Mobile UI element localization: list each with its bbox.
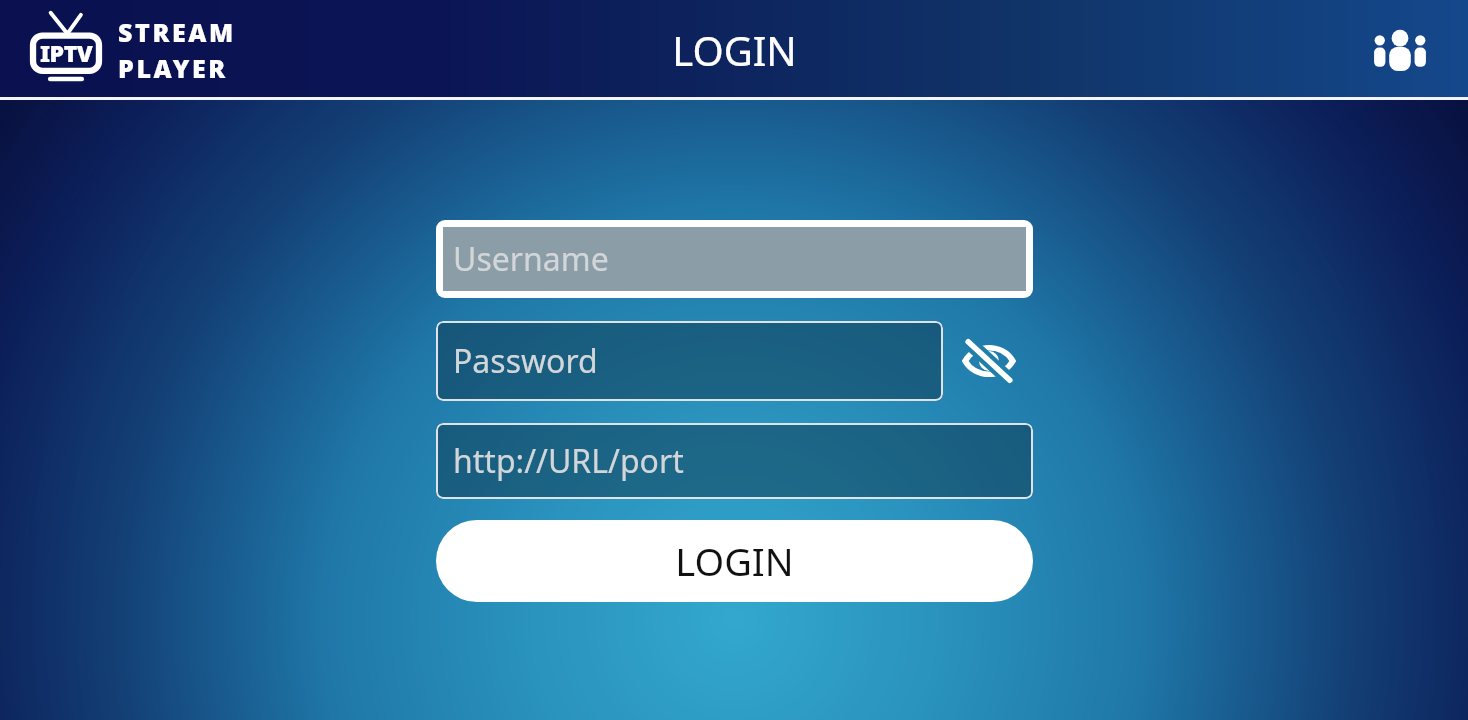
staticText: Password (453, 339, 598, 383)
button[interactable]: IPTV (24, 10, 236, 90)
button[interactable]: LOGIN (436, 520, 1033, 602)
staticText: http://URL/port (453, 439, 684, 483)
button[interactable]: Username (443, 227, 1026, 291)
button[interactable]: Accounts (1368, 18, 1432, 82)
staticText: Username (453, 237, 609, 281)
staticText: STREAM (118, 15, 236, 49)
button[interactable]: Show password (961, 333, 1017, 389)
staticText: LOGIN (672, 23, 797, 77)
staticText: PLAYER (118, 51, 228, 85)
staticText: IPTV (40, 37, 93, 68)
button[interactable]: http://URL/port (436, 423, 1033, 499)
staticText: LOGIN (675, 535, 794, 587)
button[interactable]: Password (436, 321, 943, 401)
